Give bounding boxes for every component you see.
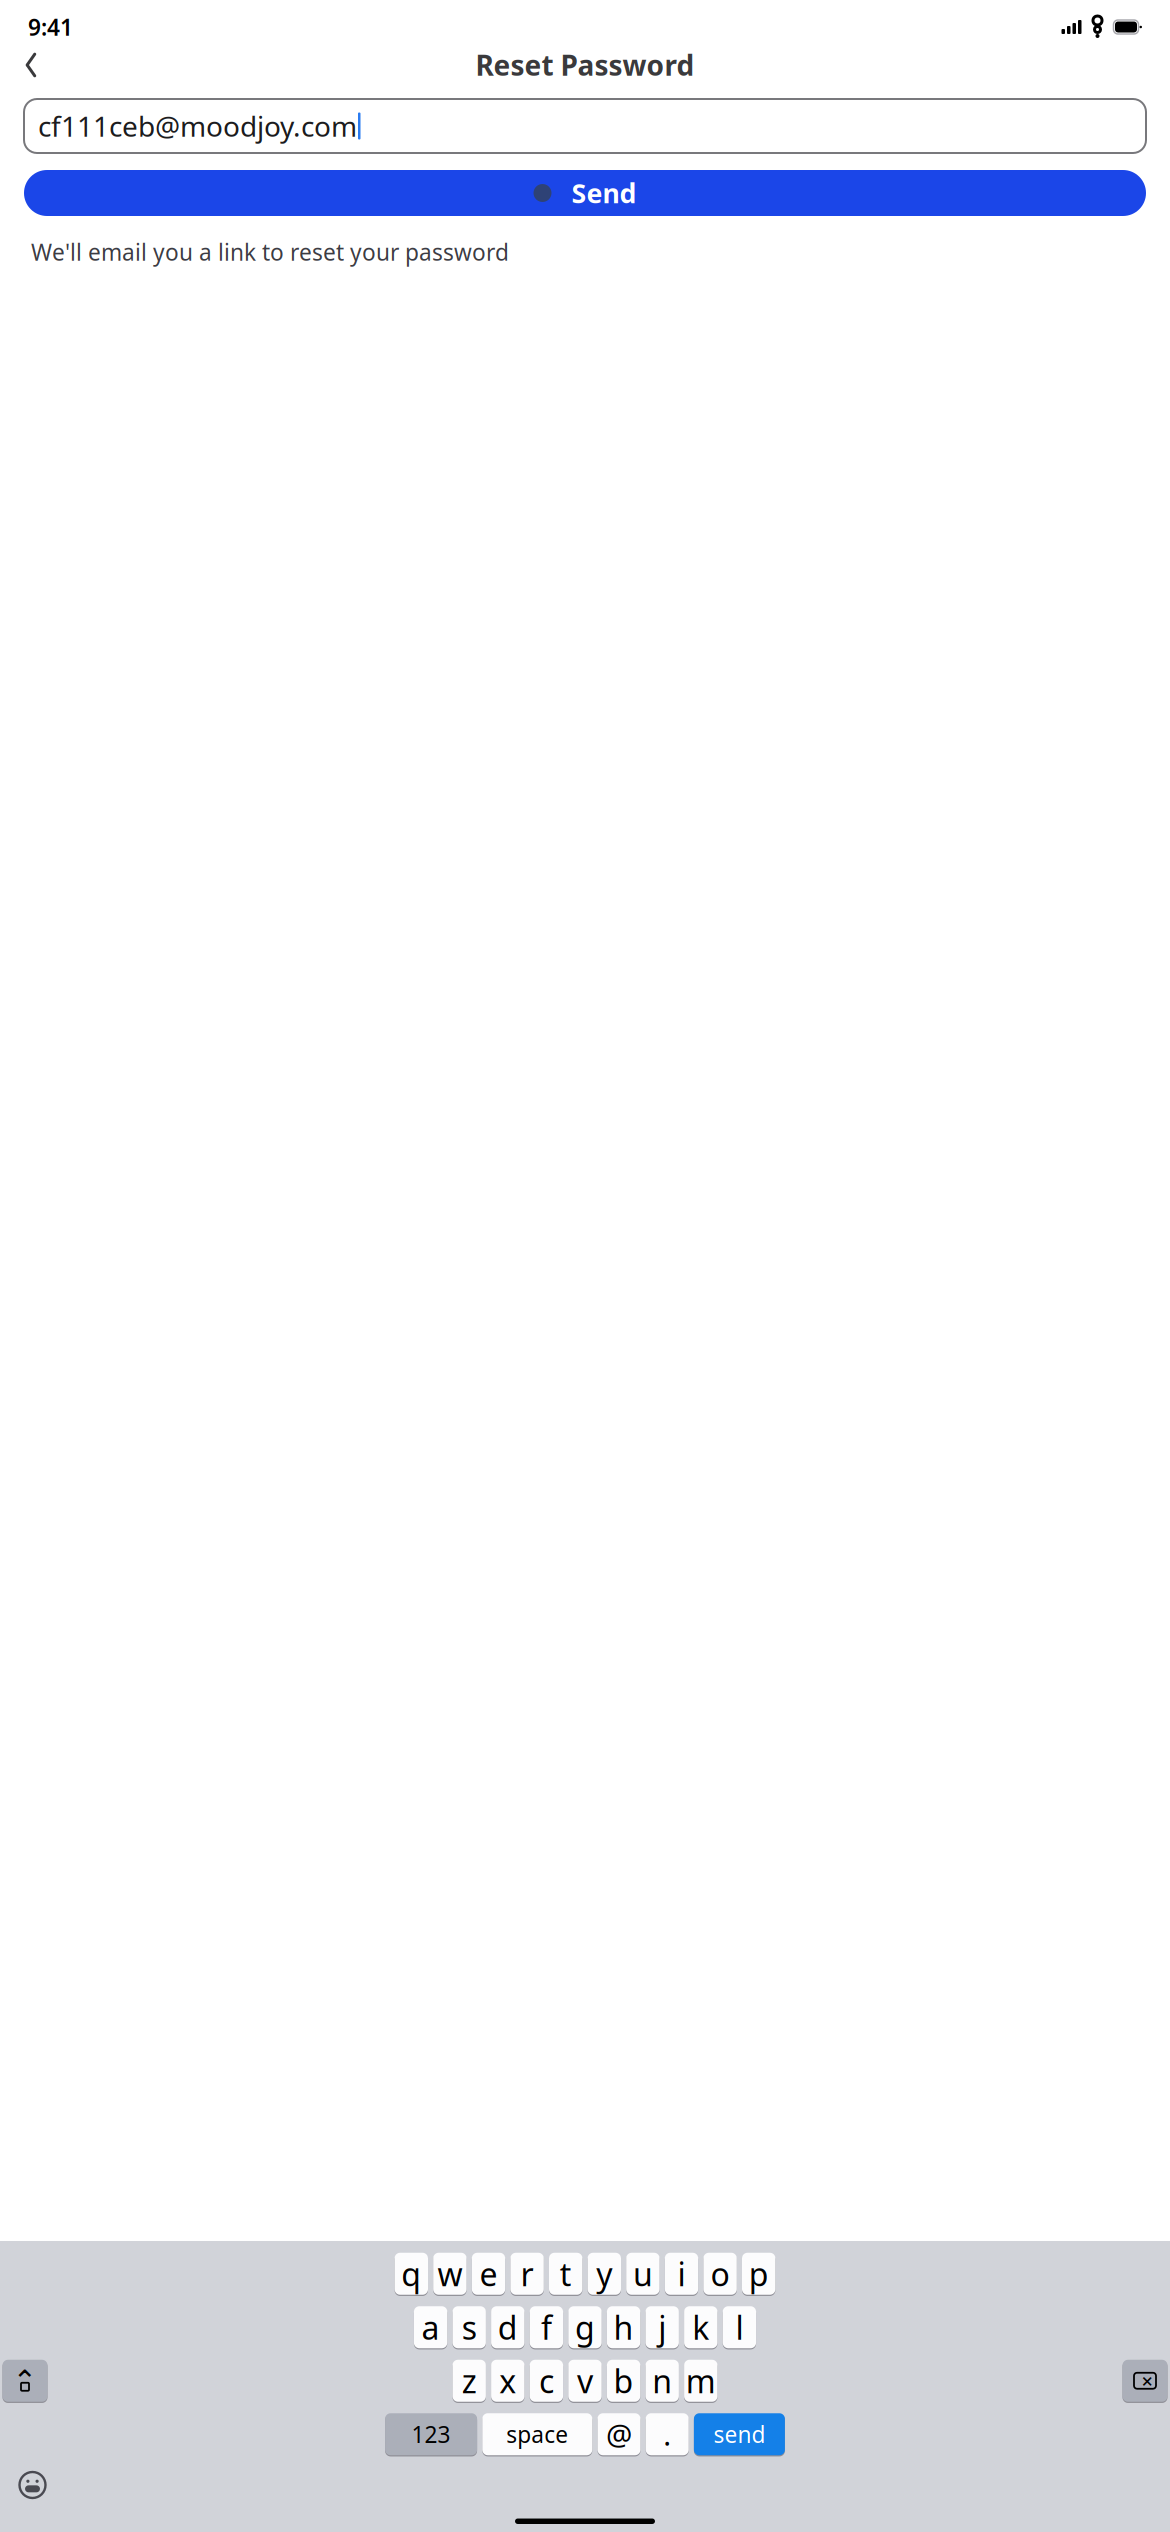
staticText: 123 bbox=[412, 2419, 451, 2449]
button[interactable]: Shift bbox=[2, 2359, 47, 2402]
button[interactable]: h bbox=[607, 2305, 640, 2349]
button[interactable]: g bbox=[568, 2305, 602, 2349]
button[interactable]: Back bbox=[8, 43, 54, 87]
button[interactable]: d bbox=[491, 2305, 524, 2349]
staticText: i bbox=[677, 2252, 685, 2295]
button[interactable]: p bbox=[742, 2252, 775, 2295]
button[interactable]: a bbox=[414, 2305, 447, 2349]
staticText: × bbox=[1141, 2367, 1152, 2394]
button[interactable]: i bbox=[665, 2252, 698, 2295]
staticText: t bbox=[560, 2252, 572, 2295]
staticText: g bbox=[575, 2306, 595, 2348]
button[interactable]: o bbox=[703, 2252, 737, 2295]
button[interactable]: x bbox=[491, 2359, 524, 2402]
staticText: o bbox=[711, 2252, 730, 2295]
staticText: y bbox=[596, 2252, 612, 2295]
staticText: l bbox=[735, 2306, 743, 2348]
button[interactable]: @ bbox=[597, 2412, 640, 2456]
button[interactable]: Emoji keyboard bbox=[10, 2465, 54, 2505]
staticText: d bbox=[498, 2306, 518, 2348]
button[interactable]: l bbox=[723, 2305, 756, 2349]
button[interactable]: m bbox=[684, 2359, 717, 2402]
staticText: f bbox=[541, 2306, 552, 2348]
button[interactable]: n bbox=[645, 2359, 679, 2402]
staticText: Send bbox=[571, 175, 636, 211]
staticText: v bbox=[577, 2359, 593, 2402]
staticText: m bbox=[686, 2359, 716, 2402]
staticText: r bbox=[521, 2252, 534, 2295]
button[interactable]: r bbox=[510, 2252, 544, 2295]
button[interactable]: b bbox=[607, 2359, 640, 2402]
staticText: c bbox=[539, 2359, 554, 2402]
button[interactable]: Email address bbox=[24, 99, 1146, 153]
button[interactable]: e bbox=[472, 2252, 505, 2295]
staticText: u bbox=[633, 2252, 653, 2295]
staticText: @ bbox=[606, 2415, 632, 2454]
button[interactable]: space bbox=[482, 2412, 592, 2456]
staticText: n bbox=[652, 2359, 672, 2402]
staticText: x bbox=[499, 2359, 516, 2402]
staticText: q bbox=[401, 2252, 421, 2295]
staticText: k bbox=[692, 2306, 709, 2348]
button[interactable]: w bbox=[433, 2252, 467, 2295]
staticText: Reset Password bbox=[475, 46, 694, 84]
staticText: . bbox=[663, 2415, 671, 2454]
button[interactable]: . bbox=[646, 2412, 689, 2456]
button[interactable]: Delete bbox=[1122, 2359, 1167, 2402]
button[interactable]: k bbox=[684, 2305, 717, 2349]
button[interactable]: j bbox=[645, 2305, 679, 2349]
button[interactable]: y bbox=[588, 2252, 621, 2295]
button[interactable]: c bbox=[530, 2359, 563, 2402]
staticText: We'll email you a link to reset your pas… bbox=[31, 237, 509, 267]
staticText: w bbox=[437, 2252, 462, 2295]
staticText: z bbox=[462, 2359, 477, 2402]
button[interactable]: v bbox=[568, 2359, 602, 2402]
staticText: p bbox=[749, 2252, 769, 2295]
staticText: j bbox=[658, 2306, 666, 2348]
button[interactable]: 123 bbox=[385, 2412, 477, 2456]
button[interactable]: f bbox=[530, 2305, 563, 2349]
staticText: ⌃ bbox=[12, 2364, 37, 2397]
staticText: space bbox=[506, 2419, 568, 2449]
button[interactable]: Send bbox=[24, 170, 1146, 216]
staticText: send bbox=[713, 2419, 765, 2449]
staticText: s bbox=[462, 2306, 477, 2348]
staticText: e bbox=[479, 2252, 497, 2295]
button[interactable]: send bbox=[694, 2412, 785, 2456]
staticText: h bbox=[614, 2306, 634, 2348]
staticText: cf111ceb@moodjoy.com bbox=[38, 107, 357, 145]
button[interactable]: q bbox=[395, 2252, 428, 2295]
staticText: a bbox=[422, 2306, 440, 2348]
button[interactable]: t bbox=[549, 2252, 582, 2295]
button[interactable]: z bbox=[452, 2359, 486, 2402]
button[interactable]: u bbox=[626, 2252, 660, 2295]
staticText: 9:41 bbox=[28, 12, 73, 42]
button[interactable]: s bbox=[452, 2305, 486, 2349]
staticText: b bbox=[614, 2359, 634, 2402]
